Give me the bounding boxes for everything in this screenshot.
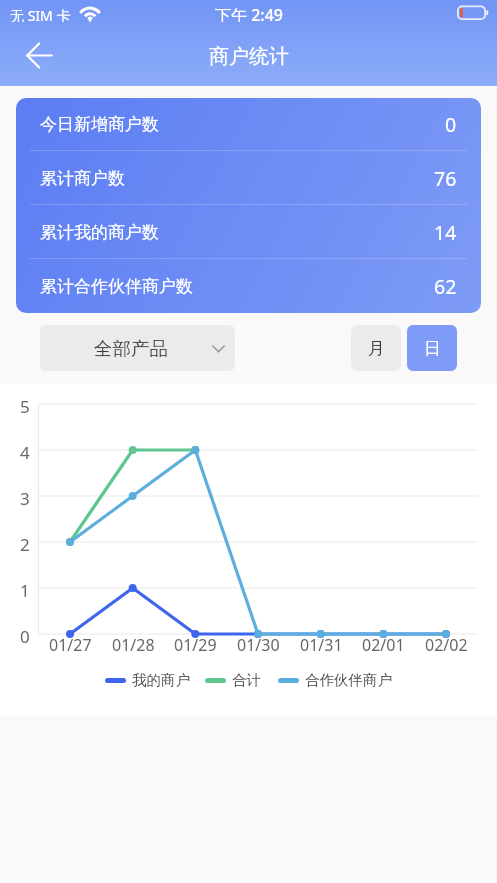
button[interactable]: 累计商户数 <box>16 151 481 205</box>
staticText: 01/29 <box>174 634 217 656</box>
staticText: 商户统计 <box>209 44 289 68</box>
staticText: 全部产品 <box>94 337 168 360</box>
button[interactable]: 今日新增商户数 <box>16 98 481 151</box>
staticText: 02/01 <box>362 634 405 656</box>
staticText: 3 <box>20 487 30 509</box>
staticText: 合作伙伴商户 <box>305 671 392 689</box>
staticText: 累计合作伙伴商户数 <box>40 276 193 297</box>
staticText: 今日新增商户数 <box>40 114 159 135</box>
staticText: 62 <box>434 273 457 300</box>
staticText: 1 <box>20 579 30 601</box>
button[interactable]: 日 <box>407 325 457 371</box>
staticText: 01/28 <box>112 634 155 656</box>
staticText: 日 <box>424 338 441 359</box>
staticText: 5 <box>20 395 30 417</box>
button[interactable]: 月 <box>351 325 401 371</box>
staticText: 下午 2:49 <box>215 4 283 22</box>
button[interactable]: 全部产品 <box>40 325 235 371</box>
staticText: 14 <box>434 219 457 246</box>
button[interactable]: 累计我的商户数 <box>16 205 481 259</box>
staticText: 4 <box>20 441 30 463</box>
staticText: 我的商户 <box>132 671 190 689</box>
button[interactable]: 累计合作伙伴商户数 <box>16 259 481 313</box>
staticText: 0 <box>20 625 30 647</box>
staticText: 76 <box>434 165 457 192</box>
staticText: 累计我的商户数 <box>40 222 159 243</box>
staticText: 02/02 <box>425 634 468 656</box>
staticText: 01/30 <box>237 634 280 656</box>
staticText: 合计 <box>232 671 261 689</box>
staticText: 累计商户数 <box>40 168 125 189</box>
staticText: 2 <box>20 533 30 555</box>
staticText: 01/27 <box>49 634 92 656</box>
staticText: 01/31 <box>300 634 343 656</box>
staticText: 0 <box>445 111 457 138</box>
staticText: 无 SIM 卡 <box>10 6 71 22</box>
button[interactable]: Back <box>13 29 65 81</box>
staticText: 月 <box>368 338 385 359</box>
